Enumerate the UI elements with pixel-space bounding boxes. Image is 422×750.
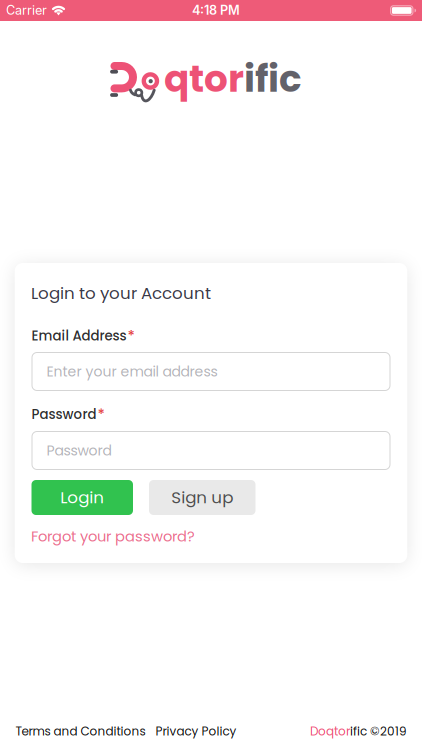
staticText: Forgot your password? <box>31 526 195 546</box>
staticText: Terms and Conditions <box>15 723 145 740</box>
staticText: Login to your Account <box>31 281 211 305</box>
button[interactable]: Privacy Policy <box>155 723 236 740</box>
staticText: ific <box>244 52 302 105</box>
staticText: qtor <box>164 52 244 105</box>
staticText: Login <box>60 486 104 509</box>
staticText: Password <box>31 405 96 424</box>
button[interactable]: Password <box>31 431 390 470</box>
staticText: Password <box>46 441 111 460</box>
button[interactable]: Sign up <box>149 480 255 515</box>
staticText: Sign up <box>171 486 233 509</box>
staticText: 4:18 PM <box>192 2 240 18</box>
staticText: * <box>127 325 134 346</box>
staticText: Email Address <box>31 326 126 345</box>
staticText: ific ©2019 <box>350 723 407 740</box>
staticText: Privacy Policy <box>155 723 236 740</box>
staticText: * <box>97 404 104 424</box>
button[interactable]: Login <box>31 480 133 515</box>
button[interactable]: Terms and Conditions <box>15 723 145 740</box>
button[interactable]: Forgot your password? <box>31 526 195 546</box>
staticText: Doqtor <box>310 723 350 740</box>
staticText: Enter your email address <box>46 362 217 381</box>
button[interactable]: Enter your email address <box>31 352 390 391</box>
staticText: Carrier <box>6 2 47 18</box>
